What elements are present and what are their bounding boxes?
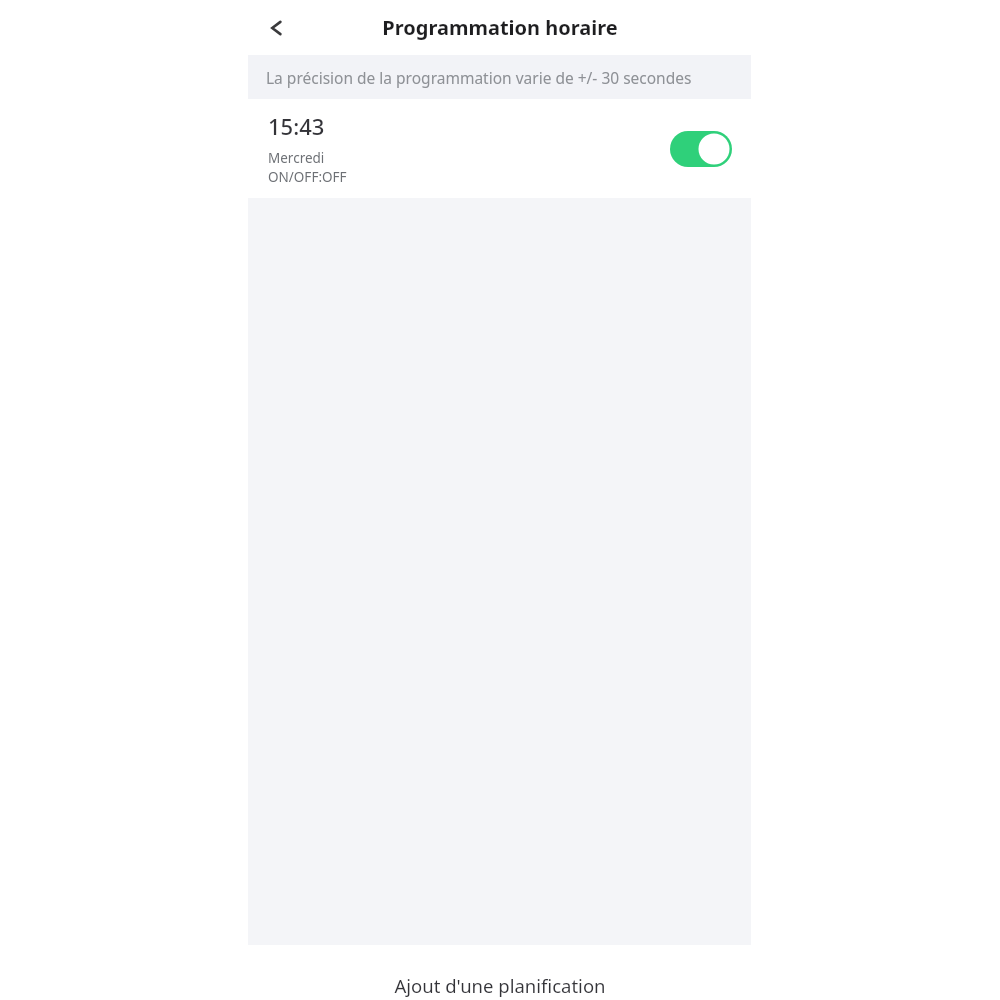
staticText: Mercredi <box>268 149 325 167</box>
staticText: 15:43 <box>268 111 325 141</box>
staticText: Ajout d'une planification <box>394 973 606 998</box>
staticText: ON/OFF:OFF <box>268 168 347 186</box>
button[interactable]: Ajout d'une planification <box>248 971 751 1000</box>
staticText: Programmation horaire <box>382 14 618 41</box>
button[interactable]: Enable schedule <box>670 131 732 167</box>
button[interactable]: 15:43 <box>248 99 751 198</box>
button[interactable]: Back <box>254 6 298 50</box>
staticText: La précision de la programmation varie d… <box>266 67 692 88</box>
